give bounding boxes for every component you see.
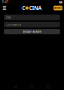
staticText: ▮▮▮ <box>59 0 62 3</box>
staticText: CINA <box>29 4 42 12</box>
staticText: Entrar <box>54 6 62 10</box>
staticText: Email <box>6 16 12 19</box>
staticText: ○ <box>30 84 33 89</box>
staticText: Iniciar sesión <box>22 30 41 33</box>
button[interactable]: Contraseña <box>4 22 60 27</box>
button[interactable]: Menu <box>1 4 7 11</box>
staticText: Contraseña <box>6 23 21 26</box>
staticText: 9:41 <box>2 0 9 4</box>
staticText: C <box>22 4 25 12</box>
staticText: □ <box>46 84 50 89</box>
button[interactable]: Entrar <box>53 6 62 10</box>
staticText: ◁ <box>13 84 16 89</box>
button[interactable]: Email <box>4 15 60 20</box>
button[interactable]: Iniciar sesión <box>4 29 60 34</box>
